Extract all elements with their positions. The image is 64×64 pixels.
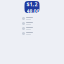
staticText: $1,248.00 xyxy=(26,1,39,15)
